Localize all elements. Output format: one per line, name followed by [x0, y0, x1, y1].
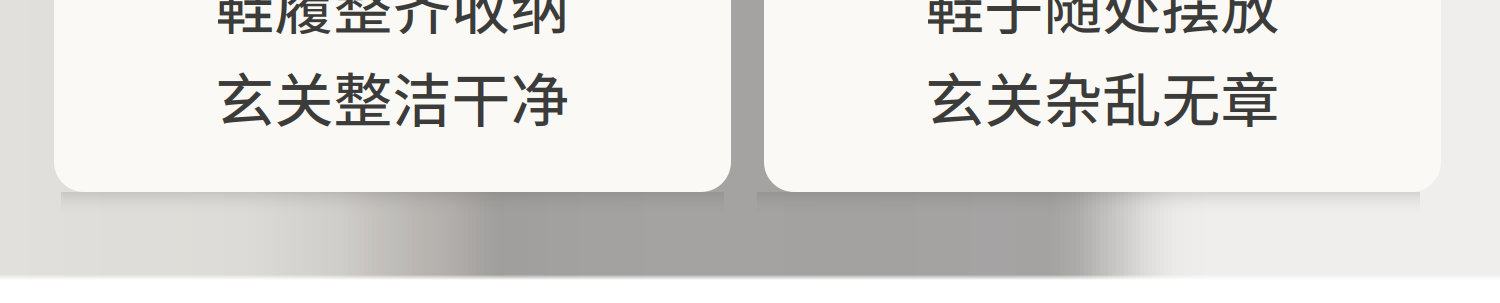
staticText: 玄关整洁干净 — [215, 54, 569, 139]
button[interactable]: 鞋子随处摆放 — [764, 0, 1441, 192]
button[interactable]: 鞋履整齐收纳 — [54, 0, 731, 192]
staticText: 鞋子随处摆放 — [925, 0, 1279, 46]
staticText: 玄关杂乱无章 — [925, 54, 1279, 139]
staticText: 鞋履整齐收纳 — [215, 0, 569, 46]
